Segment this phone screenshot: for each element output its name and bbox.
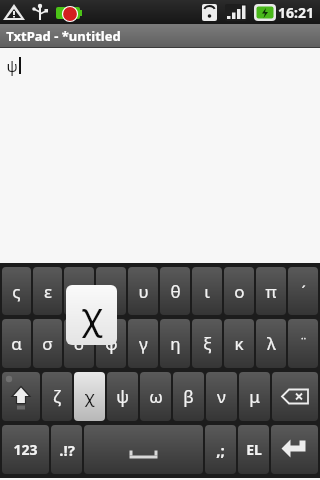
button[interactable]: .!? <box>51 425 82 474</box>
staticText: χ <box>81 291 103 340</box>
button[interactable]: β <box>173 372 204 421</box>
button[interactable]: η <box>160 319 190 368</box>
button[interactable]: π <box>256 267 286 315</box>
button[interactable]: ε <box>33 267 62 315</box>
button[interactable]: ν <box>206 372 237 421</box>
staticText: ς <box>12 280 21 303</box>
staticText: η <box>170 332 181 355</box>
button[interactable]: EL <box>238 425 269 474</box>
button[interactable]: ρ <box>64 267 94 315</box>
staticText: ω <box>149 385 163 408</box>
staticText: ψ <box>116 385 129 408</box>
staticText: ξ <box>203 332 212 355</box>
button[interactable]: τ <box>96 267 126 315</box>
staticText: ε <box>44 280 52 303</box>
staticText: λ <box>267 332 276 355</box>
button[interactable]: γ <box>128 319 158 368</box>
staticText: θ <box>170 280 181 303</box>
staticText: π <box>265 280 277 303</box>
button[interactable]: Shift <box>2 372 40 421</box>
button[interactable]: Diaeresis <box>288 319 318 368</box>
button[interactable]: ζ <box>42 372 72 421</box>
staticText: ρ <box>74 280 85 303</box>
button[interactable]: υ <box>128 267 158 315</box>
button[interactable]: ο <box>224 267 254 315</box>
staticText: 16:21 <box>278 3 314 22</box>
staticText: μ <box>249 385 260 408</box>
staticText: 123 <box>13 440 38 459</box>
staticText: β <box>183 385 194 408</box>
button[interactable]: χ <box>74 372 105 421</box>
button[interactable]: λ <box>256 319 286 368</box>
staticText: τ <box>107 280 116 303</box>
button[interactable]: μ <box>239 372 270 421</box>
staticText: ,; <box>216 440 225 460</box>
staticText: υ <box>138 280 149 303</box>
staticText: .!? <box>59 440 75 460</box>
button[interactable]: ,; <box>205 425 236 474</box>
staticText: ν <box>217 385 226 408</box>
button[interactable]: Enter <box>271 425 318 474</box>
button[interactable]: ι <box>192 267 222 315</box>
button[interactable]: ω <box>140 372 171 421</box>
staticText: α <box>11 332 22 355</box>
staticText: ¨ <box>299 334 308 353</box>
button[interactable]: Backspace <box>272 372 318 421</box>
button[interactable]: ξ <box>192 319 222 368</box>
staticText: κ <box>234 332 244 355</box>
button[interactable]: Space <box>84 425 203 474</box>
staticText: ´ <box>301 281 306 301</box>
button[interactable]: φ <box>96 319 126 368</box>
button[interactable]: ψ <box>107 372 138 421</box>
staticText: EL <box>246 440 262 459</box>
staticText: χ <box>84 385 95 408</box>
staticText: ψ <box>6 56 18 76</box>
staticText: δ <box>74 332 84 355</box>
button[interactable]: κ <box>224 319 254 368</box>
staticText: φ <box>105 332 118 355</box>
staticText: TxtPad - *untitled <box>6 27 121 45</box>
button[interactable]: Accent <box>288 267 318 315</box>
button[interactable]: ς <box>2 267 31 315</box>
staticText: ο <box>234 280 245 303</box>
button[interactable]: α <box>2 319 31 368</box>
button[interactable]: 123 <box>2 425 49 474</box>
button[interactable]: θ <box>160 267 190 315</box>
staticText: ζ <box>53 385 61 408</box>
staticText: σ <box>42 332 53 355</box>
button[interactable]: δ <box>64 319 94 368</box>
staticText: ι <box>204 280 210 303</box>
button[interactable]: σ <box>33 319 62 368</box>
staticText: γ <box>139 332 148 355</box>
